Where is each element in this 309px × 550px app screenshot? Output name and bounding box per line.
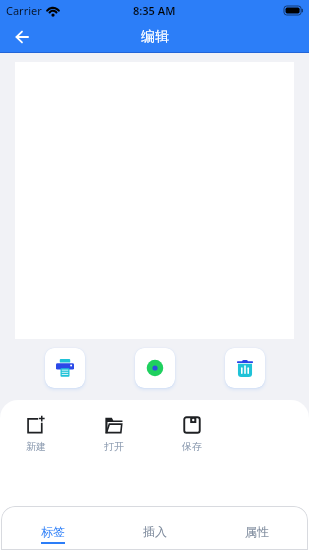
staticText: 编辑: [141, 28, 169, 46]
staticText: 标签: [41, 524, 65, 539]
staticText: Carrier: [6, 3, 42, 18]
button[interactable]: 保存: [164, 416, 220, 453]
button[interactable]: [10, 25, 34, 49]
button[interactable]: [135, 348, 175, 388]
button[interactable]: [45, 348, 85, 388]
staticText: 打开: [104, 440, 124, 453]
button[interactable]: 属性: [206, 506, 308, 550]
staticText: 新建: [26, 440, 46, 453]
staticText: 8:35 AM: [133, 3, 176, 18]
staticText: 保存: [182, 440, 202, 453]
button[interactable]: 标签: [1, 506, 104, 550]
button[interactable]: 新建: [8, 416, 64, 453]
button[interactable]: [225, 348, 265, 388]
staticText: 插入: [143, 524, 167, 539]
staticText: 属性: [245, 524, 269, 539]
button[interactable]: 插入: [104, 506, 206, 550]
button[interactable]: 打开: [86, 416, 142, 453]
